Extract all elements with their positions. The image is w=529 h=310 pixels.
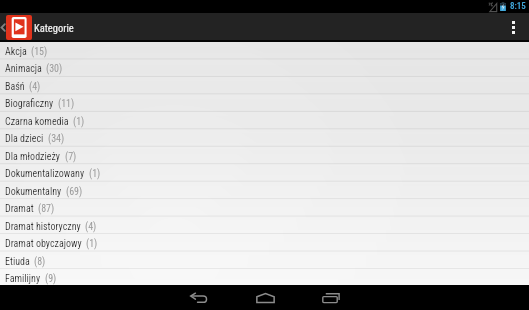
- staticText: Dramat historyczny: [5, 221, 81, 233]
- staticText: Biograficzny: [5, 98, 54, 110]
- button[interactable]: Dokumentalizowany: [0, 164, 529, 181]
- button[interactable]: Dramat historyczny: [0, 217, 529, 234]
- staticText: (87): [38, 203, 55, 215]
- button[interactable]: Biograficzny: [0, 94, 529, 111]
- button[interactable]: Etiuda: [0, 252, 529, 269]
- button[interactable]: Dramat obyczajowy: [0, 234, 529, 251]
- button[interactable]: Czarna komedia: [0, 112, 529, 129]
- button[interactable]: Dla młodzieży: [0, 147, 529, 164]
- button[interactable]: Recent apps: [314, 285, 348, 310]
- staticText: Dla młodzieży: [5, 151, 61, 163]
- button[interactable]: More options: [498, 13, 529, 42]
- button[interactable]: Dla dzieci: [0, 129, 529, 146]
- staticText: Etiuda: [5, 256, 30, 268]
- staticText: Dramat obyczajowy: [5, 238, 82, 250]
- staticText: (4): [29, 81, 41, 93]
- staticText: (8): [34, 256, 46, 268]
- button[interactable]: Back: [182, 285, 216, 310]
- staticText: (1): [86, 238, 98, 250]
- staticText: (30): [46, 63, 63, 75]
- staticText: (1): [73, 116, 85, 128]
- staticText: Dokumentalny: [5, 186, 62, 198]
- staticText: (4): [85, 221, 97, 233]
- staticText: Dokumentalizowany: [5, 168, 85, 180]
- staticText: (7): [65, 151, 77, 163]
- staticText: Akcja: [5, 46, 27, 58]
- button[interactable]: Akcja: [0, 42, 529, 59]
- button[interactable]: Dokumentalny: [0, 182, 529, 199]
- staticText: Familijny: [5, 273, 41, 285]
- button[interactable]: Home: [248, 285, 282, 310]
- button[interactable]: Navigate up: [0, 13, 33, 42]
- button[interactable]: Familijny: [0, 269, 529, 286]
- staticText: Kategorie: [34, 22, 74, 34]
- staticText: Baśń: [5, 81, 25, 93]
- button[interactable]: Baśń: [0, 77, 529, 94]
- staticText: Dramat: [5, 203, 34, 215]
- staticText: (11): [58, 98, 75, 110]
- staticText: Dla dzieci: [5, 133, 44, 145]
- staticText: (34): [48, 133, 65, 145]
- staticText: (15): [31, 46, 48, 58]
- staticText: Animacja: [5, 63, 42, 75]
- staticText: (9): [45, 273, 57, 285]
- button[interactable]: Dramat: [0, 199, 529, 216]
- staticText: (1): [89, 168, 101, 180]
- staticText: 8:15: [510, 1, 526, 12]
- staticText: Czarna komedia: [5, 116, 69, 128]
- button[interactable]: Animacja: [0, 59, 529, 76]
- staticText: (69): [66, 186, 83, 198]
